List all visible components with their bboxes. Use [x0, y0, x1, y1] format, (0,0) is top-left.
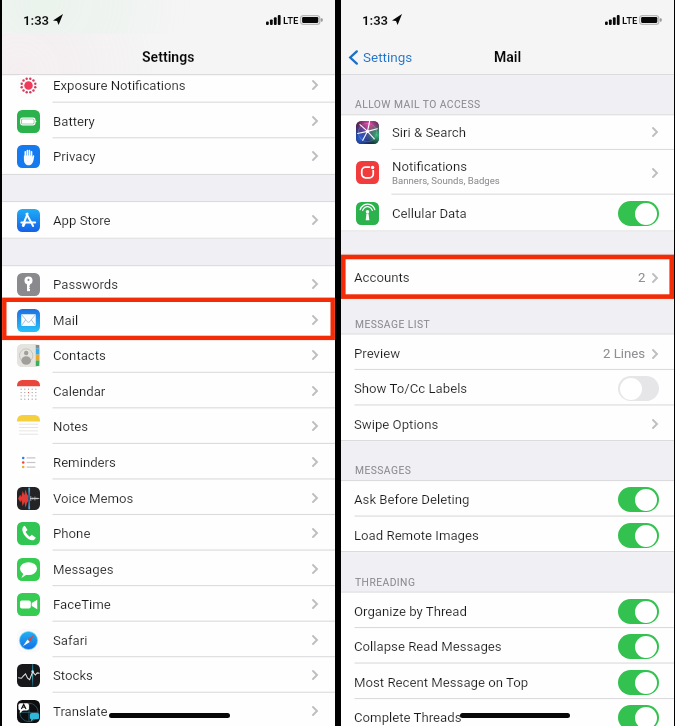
staticText: MESSAGE LIST [355, 318, 431, 330]
button[interactable]: Passwords [2, 266, 335, 302]
button[interactable]: FaceTime [2, 586, 335, 622]
staticText: Settings [363, 49, 413, 65]
button[interactable]: Switch on [618, 670, 659, 695]
staticText: Phone [53, 526, 91, 541]
staticText: Settings [142, 49, 195, 65]
staticText: Notifications [392, 159, 467, 174]
button[interactable]: Notes [2, 408, 335, 444]
button[interactable]: App Store [2, 202, 335, 238]
button[interactable]: Exposure Notifications [2, 67, 335, 103]
staticText: Translate [53, 704, 108, 719]
button[interactable]: Calendar [2, 373, 335, 409]
button[interactable]: Notifications [341, 150, 674, 195]
staticText: Show To/Cc Labels [354, 381, 468, 396]
staticText: Notes [53, 419, 89, 434]
button[interactable]: Swipe Options [341, 406, 674, 442]
staticText: MESSAGES [355, 464, 412, 476]
staticText: Stocks [53, 668, 93, 683]
button[interactable]: Switch on [618, 599, 659, 624]
staticText: Mail [53, 313, 79, 328]
button[interactable]: Mail [2, 302, 335, 338]
button[interactable]: Organize by Thread [341, 593, 674, 629]
staticText: Messages [53, 562, 114, 577]
button[interactable]: Ask Before Deleting [341, 481, 674, 517]
button[interactable]: Phone [2, 515, 335, 551]
staticText: Reminders [53, 455, 116, 470]
staticText: Exposure Notifications [53, 78, 186, 93]
button[interactable]: Safari [2, 622, 335, 658]
button[interactable]: Battery [2, 103, 335, 139]
staticText: Passwords [53, 277, 119, 292]
button[interactable]: Contacts [2, 337, 335, 373]
staticText: Privacy [53, 149, 96, 164]
button[interactable]: Switch on [618, 201, 659, 226]
staticText: FaceTime [53, 597, 111, 612]
staticText: 1:33 [362, 13, 389, 28]
button[interactable]: Translate [2, 693, 335, 726]
staticText: 2 [638, 270, 646, 285]
button[interactable]: Switch on [618, 487, 659, 512]
staticText: THREADING [355, 576, 416, 588]
button[interactable]: Messages [2, 551, 335, 587]
button[interactable]: Cellular Data [341, 195, 674, 231]
staticText: Load Remote Images [354, 528, 479, 543]
staticText: Contacts [53, 348, 106, 363]
staticText: Collapse Read Messages [354, 639, 502, 654]
button[interactable]: Load Remote Images [341, 517, 674, 553]
button[interactable]: Voice Memos [2, 480, 335, 516]
staticText: ALLOW MAIL TO ACCESS [355, 98, 481, 110]
staticText: Complete Threads [354, 710, 462, 725]
staticText: Voice Memos [53, 491, 134, 506]
staticText: Accounts [354, 270, 410, 285]
button[interactable]: Settings [349, 49, 413, 65]
button[interactable]: Most Recent Message on Top [341, 664, 674, 700]
button[interactable]: Switch on [618, 634, 659, 659]
button[interactable]: Collapse Read Messages [341, 628, 674, 664]
staticText: Preview [354, 346, 401, 361]
staticText: Cellular Data [392, 206, 467, 221]
staticText: LTE [283, 15, 299, 26]
button[interactable]: Accounts [341, 255, 674, 299]
staticText: Battery [53, 114, 95, 129]
staticText: Organize by Thread [354, 604, 467, 619]
staticText: 2 Lines [603, 346, 646, 361]
staticText: Mail [494, 49, 522, 65]
staticText: Siri & Search [392, 125, 466, 140]
button[interactable]: Siri & Search [341, 114, 674, 150]
staticText: 1:33 [23, 13, 50, 28]
staticText: LTE [622, 15, 638, 26]
button[interactable]: Privacy [2, 138, 335, 174]
staticText: Calendar [53, 384, 106, 399]
staticText: App Store [53, 213, 111, 228]
button[interactable]: Switch off [618, 376, 659, 401]
staticText: Ask Before Deleting [354, 492, 470, 507]
staticText: Swipe Options [354, 417, 439, 432]
staticText: Safari [53, 633, 88, 648]
button[interactable]: Stocks [2, 657, 335, 693]
button[interactable]: Preview [341, 335, 674, 371]
button[interactable]: Switch on [618, 705, 659, 726]
staticText: Banners, Sounds, Badges [392, 175, 500, 186]
staticText: Most Recent Message on Top [354, 675, 529, 690]
button[interactable]: Switch on [618, 523, 659, 548]
button[interactable]: Show To/Cc Labels [341, 370, 674, 406]
button[interactable]: Reminders [2, 444, 335, 480]
button[interactable]: Complete Threads [341, 699, 674, 726]
